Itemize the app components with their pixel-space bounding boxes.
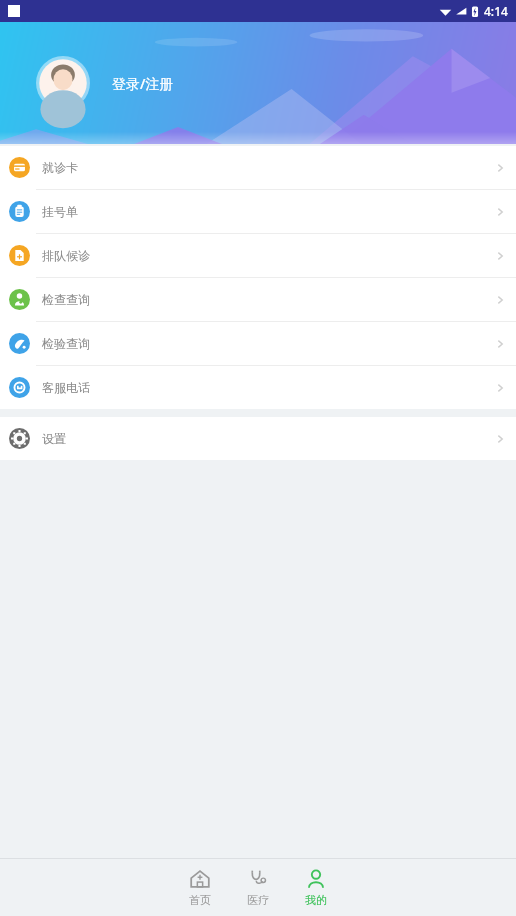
button[interactable]: 首页 xyxy=(176,864,224,911)
button[interactable]: 就诊卡 xyxy=(0,146,516,189)
button[interactable]: 排队候诊 xyxy=(0,234,516,277)
staticText: 挂号单 xyxy=(42,204,78,219)
button[interactable]: 挂号单 xyxy=(0,190,516,233)
button[interactable]: 检查查询 xyxy=(0,278,516,321)
staticText: 排队候诊 xyxy=(42,248,90,263)
staticText: 就诊卡 xyxy=(42,160,78,175)
staticText: 检查查询 xyxy=(42,292,90,307)
staticText: 我的 xyxy=(305,893,327,907)
staticText: 首页 xyxy=(189,893,211,907)
staticText: 4:14 xyxy=(484,3,508,19)
staticText: 设置 xyxy=(42,431,66,446)
button[interactable]: 登录/注册 xyxy=(36,56,174,110)
staticText: 检验查询 xyxy=(42,336,90,351)
button[interactable]: 客服电话 xyxy=(0,366,516,409)
button[interactable]: 设置 xyxy=(0,417,516,460)
button[interactable]: 医疗 xyxy=(234,864,282,911)
staticText: 客服电话 xyxy=(42,380,90,395)
staticText: 医疗 xyxy=(247,893,269,907)
staticText: 登录/注册 xyxy=(112,74,174,93)
button[interactable]: 我的 xyxy=(292,864,340,911)
button[interactable]: 检验查询 xyxy=(0,322,516,365)
